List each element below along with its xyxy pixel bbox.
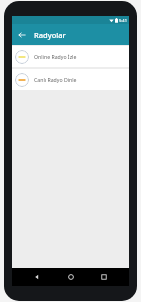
- button[interactable]: Back: [29, 269, 45, 285]
- button[interactable]: Home: [63, 269, 79, 285]
- staticText: Radyolar: [34, 30, 66, 40]
- staticText: 5:41: [119, 18, 127, 23]
- staticText: Online Radyo İzle: [34, 53, 77, 60]
- button[interactable]: Online Radyo İzle: [12, 46, 129, 67]
- button[interactable]: Navigate up: [14, 27, 29, 42]
- button[interactable]: Recent apps: [96, 269, 112, 285]
- staticText: Canlı Radyo Dinle: [34, 76, 77, 83]
- button[interactable]: Canlı Radyo Dinle: [12, 69, 129, 90]
